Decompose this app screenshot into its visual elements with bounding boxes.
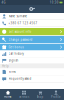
staticText: Home <box>4 95 12 98</box>
button[interactable]: Shop <box>32 89 48 100</box>
button[interactable]: Terms <box>0 68 64 75</box>
staticText: +380 67 123 4567 <box>9 22 38 25</box>
staticText: Change password <box>9 38 33 41</box>
button[interactable]: Name Surname <box>0 13 64 20</box>
staticText: Get account info <box>9 30 32 33</box>
staticText: English <box>9 59 19 62</box>
staticText: Name Surname <box>9 15 28 18</box>
button[interactable]: Services <box>16 89 32 100</box>
staticText: Profile <box>51 95 61 99</box>
button[interactable]: Change password <box>0 36 64 43</box>
staticText: Call history <box>9 52 24 56</box>
staticText: Services <box>19 95 29 98</box>
staticText: Get bonus <box>9 45 24 49</box>
button[interactable]: Get account info <box>0 28 64 35</box>
staticText: Help <box>2 64 9 68</box>
staticText: Shop <box>36 95 43 99</box>
staticText: Terms <box>9 70 16 74</box>
button[interactable]: Call history <box>0 50 64 57</box>
button[interactable]: Get bonus <box>0 44 64 50</box>
button[interactable]: English <box>0 57 64 64</box>
staticText: Frequently asked <box>9 77 32 81</box>
button[interactable]: Frequently asked <box>0 75 64 82</box>
button[interactable]: Profile <box>48 89 64 100</box>
staticText: 4G <box>1 1 5 4</box>
staticText: 10:30 <box>50 1 59 4</box>
button[interactable]: Home <box>29 7 35 11</box>
button[interactable]: +380 67 123 4567 <box>0 20 64 27</box>
button[interactable]: Home <box>0 89 16 100</box>
